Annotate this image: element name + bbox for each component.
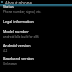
other: Settings bbox=[0, 0, 4, 4]
button[interactable]: Legal information bbox=[0, 19, 72, 24]
button[interactable]: Android version bbox=[0, 43, 72, 52]
staticText: About phone bbox=[5, 0, 32, 4]
staticText: android b0x built for x86 bbox=[3, 35, 39, 39]
staticText: Phone number, signal, etc. bbox=[3, 10, 42, 14]
staticText: Model number bbox=[3, 29, 29, 34]
button[interactable]: Model number bbox=[0, 29, 72, 38]
staticText: 4.2 bbox=[3, 49, 8, 53]
button[interactable]: Baseband version bbox=[0, 56, 72, 65]
staticText: Unknown bbox=[3, 62, 17, 66]
staticText: Android version bbox=[3, 43, 31, 48]
button[interactable]: Status bbox=[0, 4, 72, 13]
button[interactable]: Settings bbox=[0, 0, 72, 4]
staticText: Status bbox=[3, 4, 14, 9]
staticText: Legal information bbox=[3, 19, 34, 24]
staticText: Baseband version bbox=[3, 56, 34, 61]
